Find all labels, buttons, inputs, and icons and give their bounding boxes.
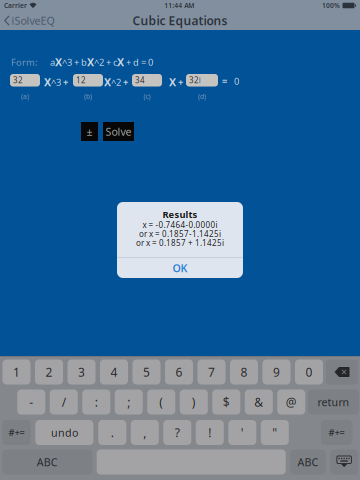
staticText: . <box>111 424 114 440</box>
staticText: #+= <box>8 426 24 439</box>
staticText: ( <box>159 394 163 410</box>
button[interactable]: 7 <box>197 359 225 384</box>
staticText: #+= <box>329 426 345 439</box>
staticText: + <box>123 76 128 88</box>
staticText: 4 <box>110 364 117 380</box>
staticText: x = -0.7464-0.0000i <box>142 220 217 230</box>
button[interactable]: ! <box>196 420 224 445</box>
button[interactable]: ( <box>147 389 175 414</box>
button[interactable]: . <box>98 420 126 445</box>
button[interactable]: , <box>131 420 159 445</box>
button[interactable]: $ <box>212 389 240 414</box>
staticText: 34 <box>135 75 145 85</box>
staticText: ) <box>192 394 196 410</box>
staticText: 9 <box>273 364 280 380</box>
button[interactable]: / <box>50 389 78 414</box>
staticText: + <box>63 76 68 88</box>
button[interactable]: 0 <box>295 359 323 384</box>
staticText: 6 <box>175 364 182 380</box>
staticText: ; <box>127 394 130 410</box>
staticText: or x = 0.1857 + 1.1425i <box>136 238 224 248</box>
staticText: ± <box>86 124 92 139</box>
staticText: @ <box>286 394 297 410</box>
button[interactable]: 3 <box>67 359 95 384</box>
staticText: (c) <box>143 92 150 101</box>
staticText: Carrier <box>4 1 27 10</box>
staticText: + d = 0 <box>124 56 153 68</box>
staticText: ^3 + b <box>62 56 87 68</box>
staticText: 12 <box>76 75 86 85</box>
button[interactable]: 1 <box>2 359 30 384</box>
button[interactable]: ; <box>115 389 143 414</box>
staticText: " <box>272 424 277 440</box>
staticText: ' <box>241 424 244 440</box>
button[interactable]: Hide keyboard <box>330 449 358 474</box>
button[interactable]: ' <box>228 420 256 445</box>
staticText: (d) <box>198 92 206 101</box>
staticText: Solve <box>105 124 131 139</box>
button[interactable]: iSolveEQ <box>0 11 58 30</box>
staticText: or x = 0.1857-1.1425i <box>139 229 221 239</box>
button[interactable]: #+= <box>2 420 31 445</box>
button[interactable]: 9 <box>262 359 290 384</box>
staticText: ^2 <box>111 76 121 88</box>
staticText: return <box>317 395 349 409</box>
button[interactable]: OK <box>117 258 243 278</box>
staticText: ^3 <box>51 76 61 88</box>
button[interactable]: @ <box>277 389 305 414</box>
button[interactable]: Solve <box>103 122 134 141</box>
staticText: ^2 + c <box>94 56 117 68</box>
staticText: & <box>254 394 263 410</box>
staticText: 7 <box>208 364 215 380</box>
staticText: X <box>117 55 124 69</box>
staticText: X <box>87 55 94 69</box>
staticText: 32 <box>189 75 199 85</box>
staticText: 100% <box>322 1 340 10</box>
staticText: = <box>222 75 227 87</box>
staticText: 0 <box>305 364 312 380</box>
staticText: X <box>169 75 176 89</box>
button[interactable]: ABC <box>2 449 92 474</box>
staticText: undo <box>51 425 78 440</box>
button[interactable]: " <box>261 420 289 445</box>
button[interactable]: - <box>17 389 45 414</box>
button[interactable]: 5 <box>132 359 160 384</box>
staticText: Results <box>162 208 197 221</box>
button[interactable]: ABC <box>290 449 326 474</box>
staticText: Cubic Equations <box>132 12 227 28</box>
button[interactable]: 2 <box>35 359 63 384</box>
staticText: iSolveEQ <box>11 13 54 28</box>
staticText: 1 <box>13 364 20 380</box>
staticText: OK <box>172 261 187 275</box>
button[interactable]: Delete <box>326 359 358 384</box>
staticText: (a) <box>21 92 29 101</box>
button[interactable]: ± <box>81 122 98 141</box>
staticText: X <box>44 75 51 89</box>
staticText: X <box>55 55 62 69</box>
staticText: 2 <box>45 364 52 380</box>
button[interactable]: 4 <box>100 359 128 384</box>
button[interactable]: & <box>245 389 273 414</box>
button[interactable]: ) <box>180 389 208 414</box>
staticText: × <box>341 364 347 379</box>
staticText: 32 <box>13 75 23 85</box>
button[interactable]: : <box>82 389 110 414</box>
staticText: X <box>104 75 111 89</box>
staticText: (b) <box>84 92 92 101</box>
staticText: ABC <box>37 455 58 469</box>
button[interactable]: ? <box>163 420 191 445</box>
staticText: ? <box>175 424 180 440</box>
button[interactable]: return <box>308 389 359 414</box>
staticText: / <box>62 394 66 410</box>
staticText: 0 <box>234 75 239 87</box>
button[interactable]: #+= <box>321 420 352 445</box>
button[interactable]: 6 <box>165 359 193 384</box>
button[interactable]: 8 <box>230 359 258 384</box>
staticText: : <box>95 394 98 410</box>
staticText: 5 <box>143 364 150 380</box>
button[interactable]: undo <box>35 420 93 445</box>
staticText: 3 <box>78 364 85 380</box>
staticText: $ <box>223 394 230 410</box>
